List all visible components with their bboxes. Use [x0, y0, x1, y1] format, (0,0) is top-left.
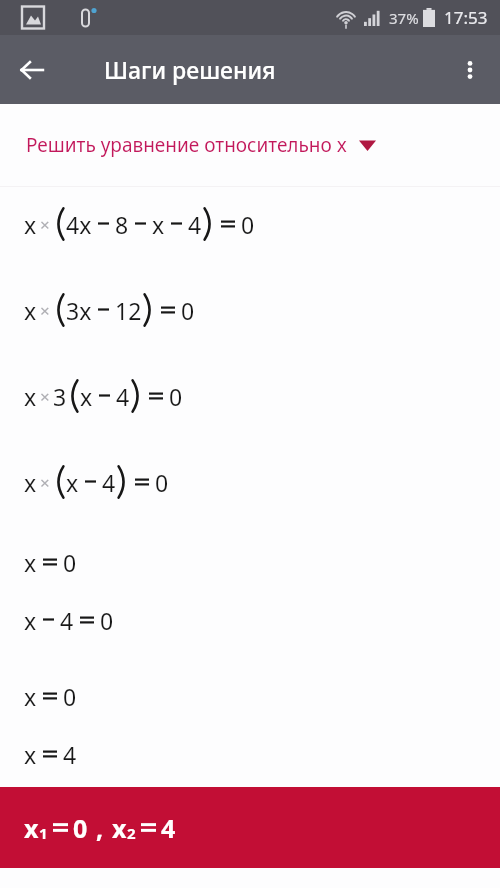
staticText: 17:53 [444, 6, 488, 29]
staticText: x [80, 381, 93, 412]
button[interactable]: Back [8, 46, 56, 94]
staticText: 12 [115, 295, 142, 326]
staticText: 0 [63, 681, 77, 712]
staticText: 4 [102, 467, 116, 498]
staticText: 8 [115, 209, 129, 240]
staticText: 4 [63, 739, 77, 770]
staticText: × [40, 213, 50, 236]
button[interactable]: x [0, 787, 500, 868]
staticText: 1 [39, 823, 48, 843]
staticText: 0 [73, 811, 88, 845]
staticText: 4x [66, 209, 92, 240]
staticText: Шаги решения [104, 54, 276, 85]
staticText: x [24, 381, 37, 412]
staticText: 4 [60, 605, 74, 636]
staticText: 4 [188, 209, 202, 240]
staticText: 4 [161, 811, 176, 845]
staticText: , [96, 811, 104, 845]
staticText: x [24, 739, 37, 770]
staticText: 0 [100, 605, 114, 636]
staticText: × [40, 385, 50, 408]
staticText: Решить уравнение относительно x [26, 132, 347, 158]
staticText: x [66, 467, 79, 498]
staticText: 3x [66, 295, 92, 326]
staticText: 0 [169, 381, 183, 412]
staticText: × [40, 471, 50, 494]
staticText: × [40, 299, 50, 322]
staticText: x [24, 547, 37, 578]
staticText: 0 [63, 547, 77, 578]
button[interactable]: More options [446, 46, 494, 94]
staticText: 3 [53, 381, 67, 412]
staticText: x [24, 295, 37, 326]
staticText: 2 [127, 823, 136, 843]
staticText: x [24, 681, 37, 712]
staticText: 0 [155, 467, 169, 498]
staticText: 37% [389, 8, 419, 28]
staticText: x [24, 811, 39, 845]
staticText: 4 [116, 381, 130, 412]
staticText: x [24, 467, 37, 498]
button[interactable]: Решить уравнение относительно x [0, 104, 500, 186]
staticText: x [24, 605, 37, 636]
staticText: x [24, 209, 37, 240]
staticText: x [112, 811, 127, 845]
staticText: 0 [181, 295, 195, 326]
staticText: x [152, 209, 165, 240]
staticText: 0 [241, 209, 255, 240]
